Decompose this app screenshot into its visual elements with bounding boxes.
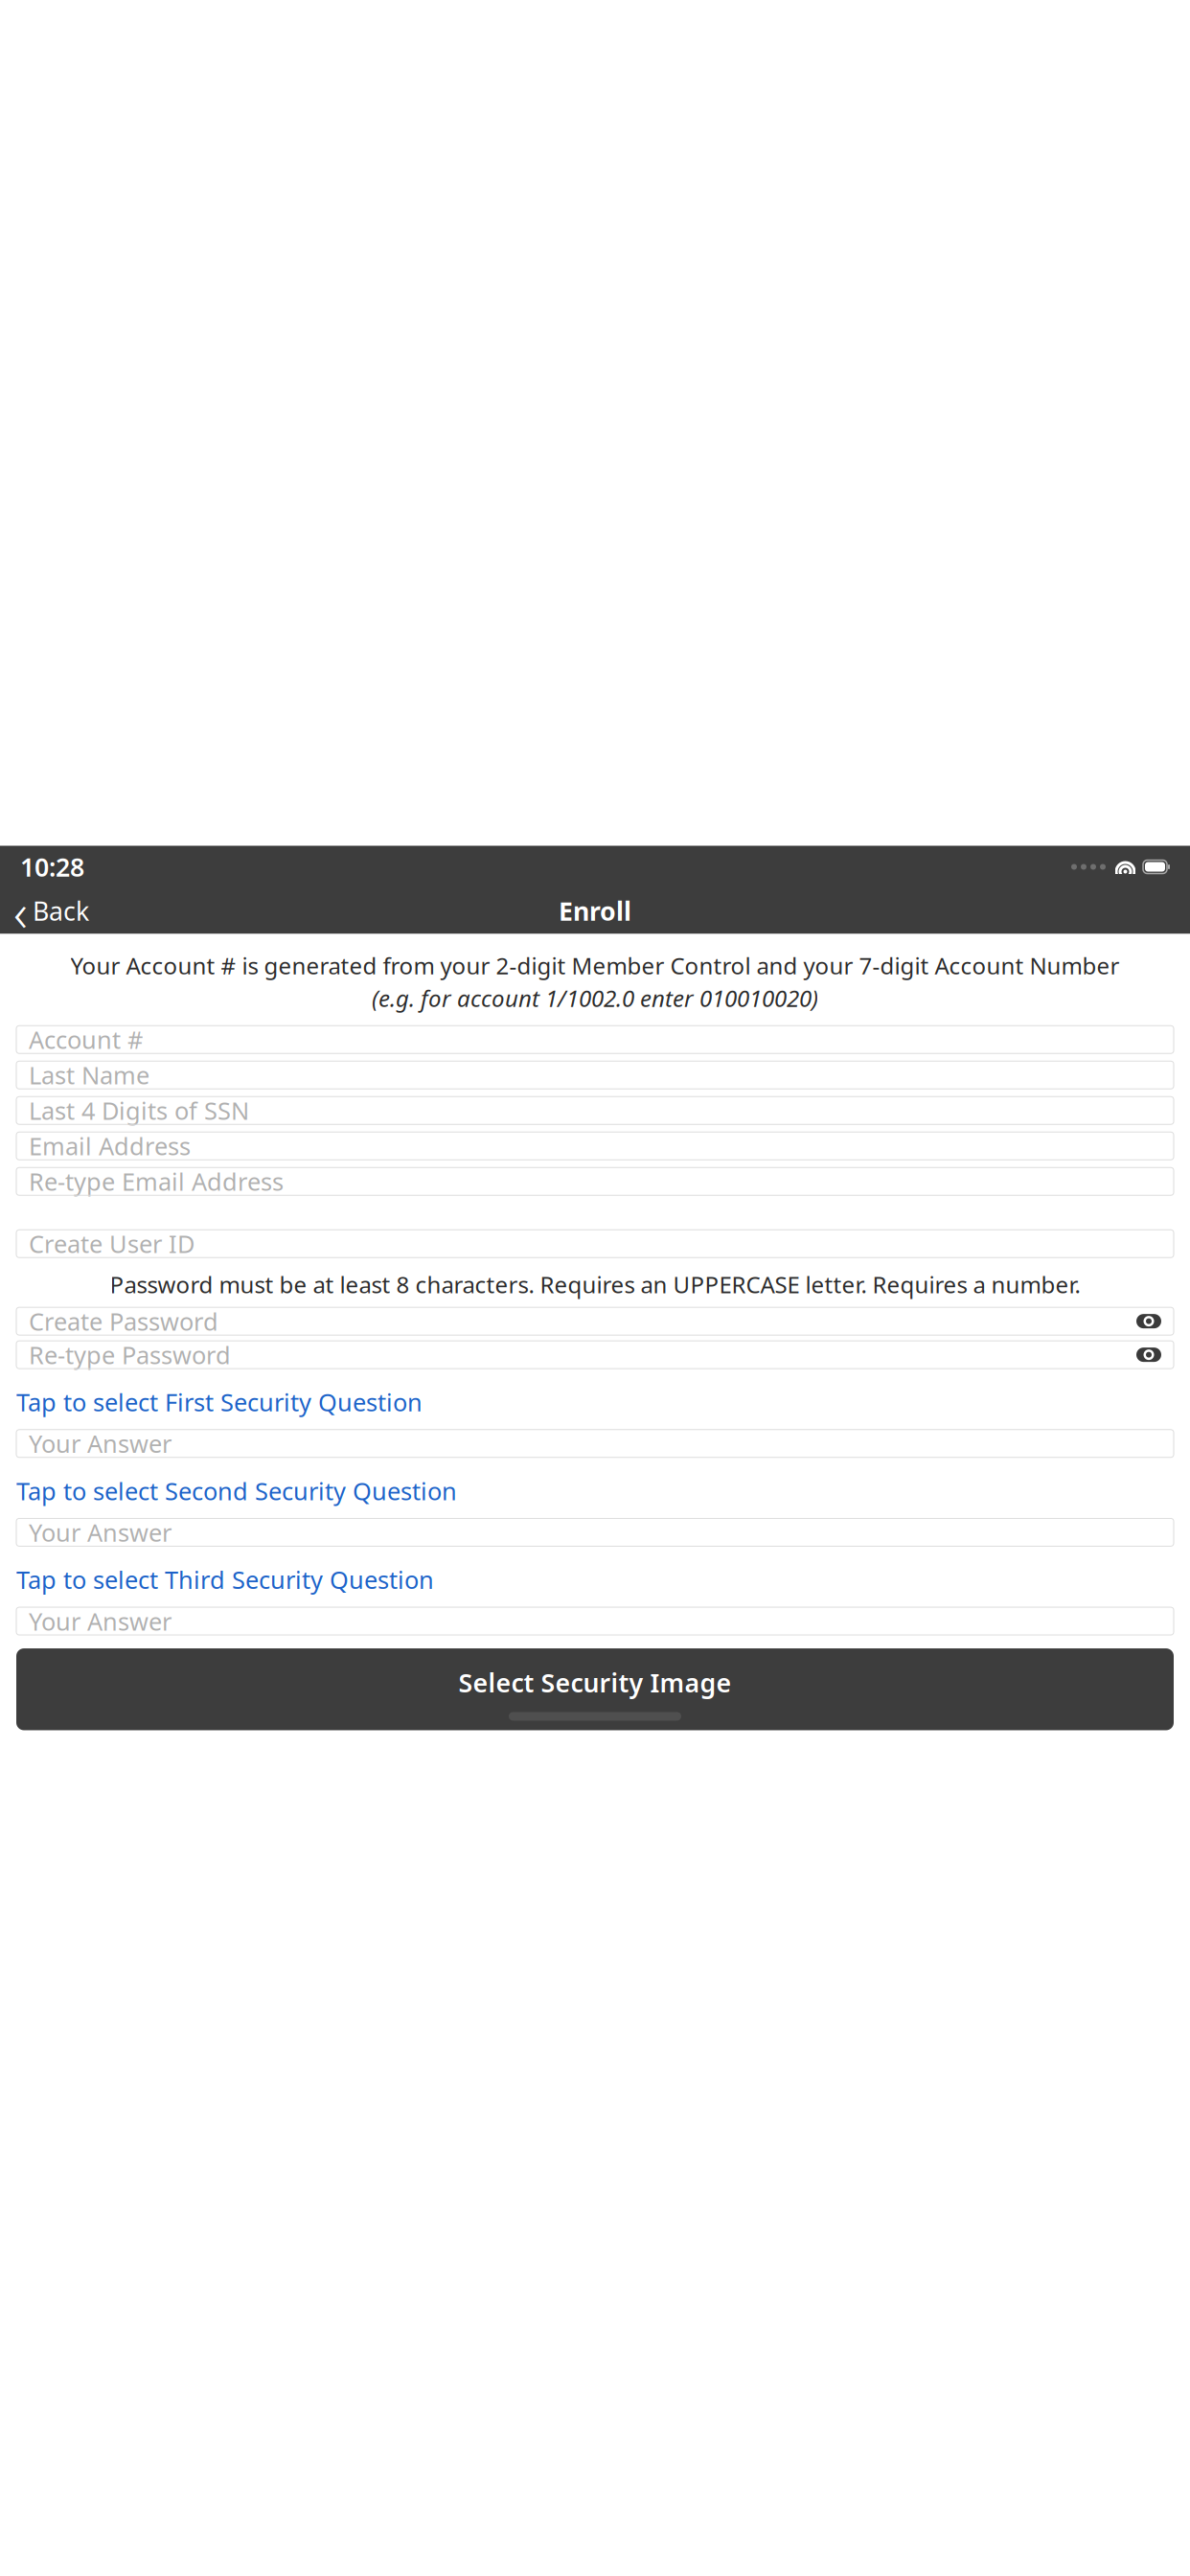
staticText: Your Answer <box>29 1427 172 1460</box>
staticText: Tap to select First Security Question <box>16 1386 423 1418</box>
staticText: Last Name <box>29 1059 149 1091</box>
button[interactable]: Create User ID <box>16 1230 1174 1258</box>
button[interactable]: Create Password <box>16 1307 1174 1335</box>
button[interactable]: ‹ <box>6 890 97 932</box>
staticText: Back <box>33 894 89 928</box>
button[interactable]: Account # <box>16 1026 1174 1053</box>
staticText: Re-type Email Address <box>29 1165 284 1197</box>
staticText: Select Security Image <box>458 1666 732 1700</box>
staticText: 10:28 <box>20 850 84 884</box>
staticText: Email Address <box>29 1130 191 1162</box>
staticText: Tap to select Third Security Question <box>16 1563 434 1596</box>
staticText: Tap to select Second Security Question <box>16 1475 457 1507</box>
staticText: (e.g. for account 1/1002.0 enter 0100100… <box>372 983 818 1013</box>
button[interactable]: Last 4 Digits of SSN <box>16 1097 1174 1124</box>
button[interactable]: Re-type Password <box>16 1341 1174 1369</box>
staticText: Enroll <box>559 894 631 928</box>
staticText: Your Answer <box>29 1605 172 1637</box>
staticText: Last 4 Digits of SSN <box>29 1094 249 1127</box>
button[interactable]: Select Security Image <box>16 1648 1174 1730</box>
button[interactable]: Your Answer <box>16 1518 1174 1546</box>
button[interactable]: Email Address <box>16 1132 1174 1160</box>
staticText: Create User ID <box>29 1228 195 1260</box>
button[interactable]: Your Answer <box>16 1607 1174 1635</box>
staticText: ‹ <box>13 875 28 947</box>
staticText: Re-type Password <box>29 1339 231 1371</box>
button[interactable]: Tap to select Third Security Question <box>16 1563 1174 1596</box>
button[interactable]: Last Name <box>16 1061 1174 1089</box>
staticText: Your Answer <box>29 1516 172 1548</box>
button[interactable]: Your Answer <box>16 1430 1174 1457</box>
staticText: Account # <box>29 1023 143 1056</box>
button[interactable]: Tap to select Second Security Question <box>16 1475 1174 1507</box>
button[interactable]: Tap to select First Security Question <box>16 1386 1174 1418</box>
staticText: Your Account # is generated from your 2-… <box>70 950 1120 981</box>
staticText: Create Password <box>29 1305 218 1337</box>
button[interactable]: Re-type Email Address <box>16 1168 1174 1195</box>
staticText: Password must be at least 8 characters. … <box>110 1269 1080 1300</box>
